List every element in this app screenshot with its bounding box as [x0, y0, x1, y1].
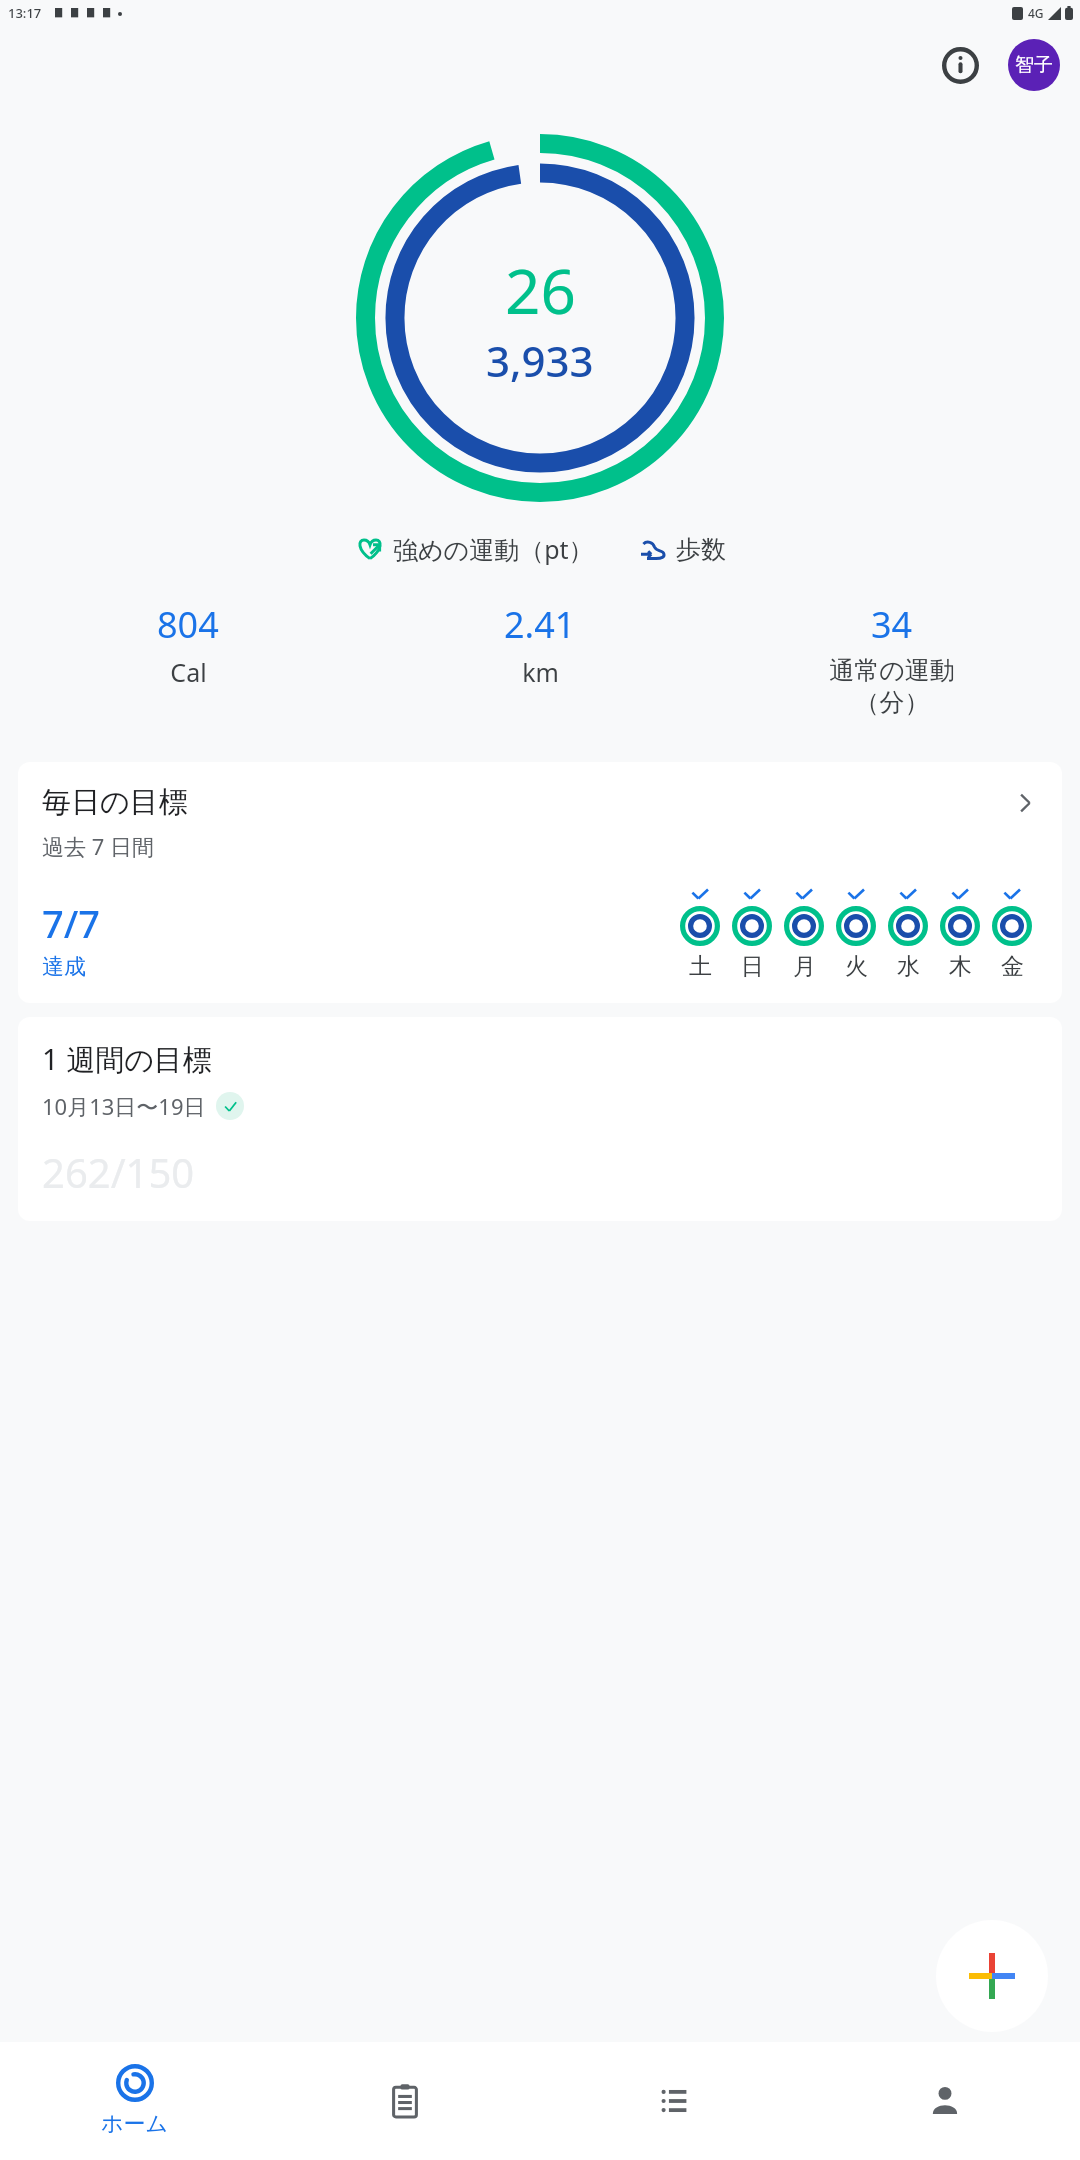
staticText: 3,933	[486, 332, 594, 389]
staticText: 火	[845, 952, 868, 981]
staticText: 4G	[1028, 5, 1044, 21]
button[interactable]: 歩数	[634, 530, 730, 569]
staticText: 木	[949, 952, 972, 981]
staticText: 水	[897, 952, 920, 981]
staticText: 1 週間の目標	[42, 1039, 212, 1079]
staticText: 金	[1001, 952, 1024, 981]
staticText: 過去 7 日間	[42, 831, 155, 861]
staticText: 26	[505, 248, 576, 332]
button[interactable]: 智子	[1008, 39, 1060, 91]
staticText: 達成	[42, 953, 86, 981]
staticText: 804	[157, 600, 219, 649]
button[interactable]: ホーム	[0, 2042, 270, 2160]
staticText: 土	[689, 952, 712, 981]
staticText: 2.41	[504, 600, 576, 649]
staticText: 13:17	[8, 4, 42, 22]
button[interactable]: Journal	[270, 2042, 540, 2160]
button[interactable]: Info	[934, 39, 986, 91]
staticText: 262/150	[42, 1145, 195, 1199]
staticText: km	[522, 655, 559, 689]
staticText: 月	[793, 952, 816, 981]
staticText: 智子	[1015, 53, 1053, 77]
button[interactable]: Add	[936, 1920, 1048, 2032]
staticText: 毎日の目標	[42, 784, 1012, 821]
button[interactable]: Profile	[810, 2042, 1080, 2160]
staticText: 7/7	[42, 897, 101, 949]
staticText: 強めの運動（pt）	[393, 532, 594, 566]
staticText: 10月13日〜19日	[42, 1091, 206, 1121]
button[interactable]: 804	[12, 596, 364, 693]
staticText: 34	[871, 600, 913, 649]
button[interactable]: 2.41	[364, 596, 716, 693]
staticText: 歩数	[676, 534, 726, 565]
staticText: 日	[741, 952, 764, 981]
button[interactable]: 1 週間の目標	[18, 1017, 1062, 1221]
button[interactable]: Browse	[540, 2042, 810, 2160]
button[interactable]: 強めの運動（pt）	[351, 528, 598, 570]
staticText: Cal	[170, 655, 207, 689]
staticText: 通常の運動 （分）	[829, 655, 955, 718]
button[interactable]: 34	[716, 596, 1068, 722]
staticText: ホーム	[101, 2110, 169, 2138]
button[interactable]: 毎日の目標	[18, 762, 1062, 1003]
